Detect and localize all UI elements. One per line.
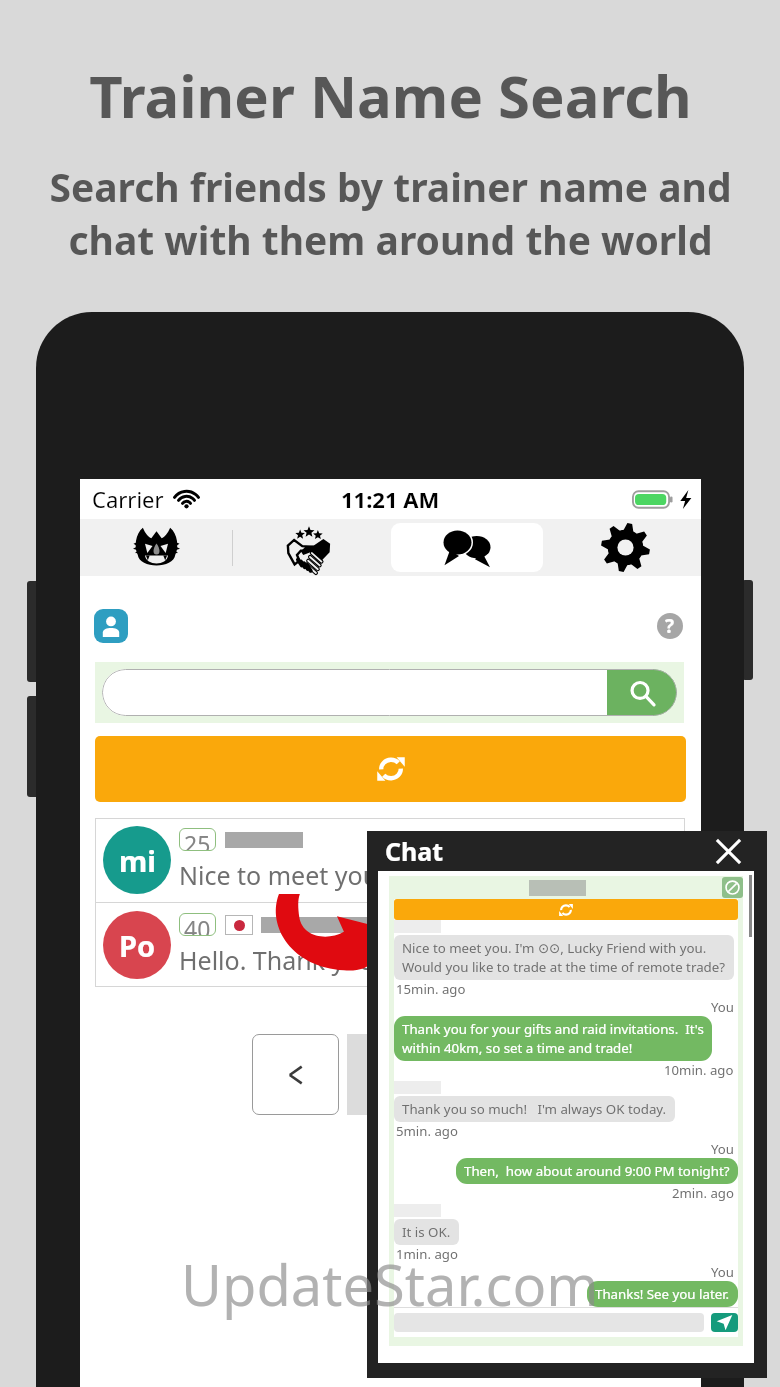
staticText: Hello. Thank you f [179, 943, 390, 977]
staticText: It is OK. [402, 1223, 451, 1241]
staticText: You [711, 998, 734, 1016]
button[interactable]: Close [715, 838, 741, 864]
staticText: You [711, 1140, 734, 1158]
button[interactable]: Block [722, 877, 743, 898]
staticText: Po [119, 926, 156, 965]
staticText: 15min. ago [396, 980, 466, 998]
button[interactable]: Friends [233, 519, 385, 576]
staticText: 5min. ago [396, 1122, 458, 1140]
staticText: Nice to meet you. I'm ⊙⊙, Lucky Friend w… [402, 939, 726, 976]
staticText: Then, how about around 9:00 PM tonight? [464, 1162, 730, 1180]
staticText: Trainer Name Search [89, 56, 692, 135]
staticText: Thank you so much! I'm always OK today. [402, 1100, 667, 1118]
staticText: Thank you for your gifts and raid invita… [402, 1020, 704, 1057]
staticText: 40 [184, 913, 211, 936]
button[interactable]: Pokemon [80, 519, 232, 576]
button[interactable]: Profile [94, 609, 128, 643]
staticText: 10min. ago [664, 1061, 734, 1079]
button[interactable]: Help [657, 613, 683, 639]
button[interactable]: Settings [549, 519, 701, 576]
staticText: 11:21 AM [341, 484, 440, 514]
button[interactable]: Next page [347, 1034, 434, 1115]
staticText: ? [665, 613, 675, 639]
staticText: Thanks! See you later. [595, 1285, 730, 1303]
staticText: UpdateStar.com [181, 1246, 599, 1322]
staticText: Nice to meet you. [179, 858, 385, 892]
staticText: Carrier [92, 484, 164, 514]
button[interactable]: Search [102, 669, 677, 716]
button[interactable]: Reload [95, 736, 686, 802]
button[interactable]: Reload chat [394, 899, 738, 920]
staticText: 25 [184, 828, 211, 851]
staticText: 1min. ago [396, 1245, 458, 1263]
button[interactable]: Send [711, 1313, 738, 1332]
button[interactable]: mi [103, 818, 681, 902]
button[interactable]: Previous page [252, 1034, 339, 1115]
staticText: 2min. ago [672, 1184, 734, 1202]
button[interactable]: Search [607, 669, 677, 716]
staticText: You [711, 1263, 734, 1281]
staticText: Search friends by trainer name and chat … [49, 160, 732, 266]
staticText: mi [119, 841, 156, 880]
button[interactable]: Chat [391, 523, 543, 572]
staticText: Chat [385, 834, 444, 868]
button[interactable]: Po [103, 903, 681, 987]
